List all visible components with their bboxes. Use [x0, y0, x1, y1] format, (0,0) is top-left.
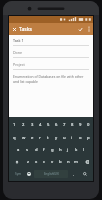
staticText: s [26, 147, 29, 153]
button[interactable]: Search [78, 169, 91, 179]
staticText: f [43, 147, 45, 153]
staticText: 3 [31, 122, 34, 128]
staticText: l [83, 147, 85, 153]
staticText: 9 [79, 122, 82, 128]
button[interactable]: c [40, 157, 48, 167]
button[interactable]: q [10, 132, 19, 143]
staticText: Enumeration of Databases on file with ot… [13, 74, 89, 84]
staticText: 1 [13, 122, 16, 128]
button[interactable]: i [68, 132, 76, 143]
staticText: h [59, 147, 62, 153]
button[interactable]: 3 [28, 119, 36, 130]
button[interactable]: d [32, 145, 40, 155]
staticText: u [63, 135, 66, 141]
button[interactable]: Project [13, 62, 89, 70]
button[interactable]: 7 [60, 119, 68, 130]
button[interactable]: 0 [84, 119, 92, 130]
button[interactable]: o [76, 132, 84, 143]
button[interactable]: 4 [36, 119, 44, 130]
staticText: 4 [39, 122, 42, 128]
button[interactable]: Shift [10, 157, 23, 167]
button[interactable]: r [36, 132, 44, 143]
button[interactable]: e [28, 132, 36, 143]
button[interactable]: z [23, 157, 32, 167]
staticText: g [51, 147, 54, 153]
button[interactable]: j [64, 145, 72, 155]
staticText: c [43, 159, 46, 165]
staticText: i [71, 135, 73, 141]
staticText: Tasks [19, 26, 32, 33]
button[interactable]: . [69, 169, 78, 179]
button[interactable]: m [72, 157, 80, 167]
staticText: r [39, 135, 41, 141]
button[interactable]: h [56, 145, 64, 155]
staticText: b [59, 159, 62, 165]
button[interactable]: 9 [76, 119, 84, 130]
button[interactable]: f [40, 145, 48, 155]
staticText: k [75, 147, 78, 153]
button[interactable]: k [72, 145, 80, 155]
staticText: Done [13, 50, 23, 55]
button[interactable]: g [48, 145, 56, 155]
staticText: y [55, 135, 58, 141]
button[interactable]: Emoji [24, 169, 33, 179]
staticText: 8 [71, 122, 74, 128]
staticText: 6 [55, 122, 58, 128]
button[interactable]: a [14, 145, 23, 155]
button[interactable]: Backspace [80, 157, 92, 167]
staticText: p [87, 135, 90, 141]
button[interactable]: More options [85, 23, 93, 35]
staticText: 7 [63, 122, 66, 128]
button[interactable]: v [48, 157, 56, 167]
button[interactable]: x [32, 157, 40, 167]
button[interactable]: 8 [68, 119, 76, 130]
staticText: Task 1 [13, 38, 24, 43]
button[interactable]: Close [9, 23, 19, 35]
staticText: q [13, 135, 16, 141]
staticText: a [17, 147, 20, 153]
staticText: 0 [87, 122, 90, 128]
staticText: o [79, 135, 82, 141]
staticText: v [51, 159, 54, 165]
staticText: . [73, 172, 75, 177]
button[interactable]: Sym [11, 169, 24, 179]
staticText: n [67, 159, 70, 165]
button[interactable]: t [44, 132, 52, 143]
button[interactable]: p [84, 132, 92, 143]
button[interactable]: 5 [44, 119, 52, 130]
button[interactable]: b [56, 157, 64, 167]
button[interactable]: 6 [52, 119, 60, 130]
button[interactable]: s [23, 145, 32, 155]
staticText: English(UK) [44, 172, 59, 176]
button[interactable]: Task 1 [13, 38, 89, 46]
button[interactable]: Save [75, 23, 85, 35]
staticText: x [35, 159, 38, 165]
staticText: d [35, 147, 38, 153]
staticText: m [74, 159, 78, 165]
staticText: t [47, 135, 49, 141]
staticText: 2 [22, 122, 25, 128]
staticText: j [67, 147, 69, 153]
staticText: Project [13, 62, 25, 67]
staticText: 5 [47, 122, 50, 128]
button[interactable]: w [19, 132, 28, 143]
staticText: w [22, 135, 26, 141]
button[interactable]: 2 [19, 119, 28, 130]
button[interactable]: n [64, 157, 72, 167]
staticText: e [31, 135, 34, 141]
button[interactable]: Space [34, 170, 68, 178]
button[interactable]: y [52, 132, 60, 143]
staticText: Sym [15, 172, 21, 176]
button[interactable]: l [80, 145, 88, 155]
button[interactable]: u [60, 132, 68, 143]
button[interactable]: 1 [10, 119, 19, 130]
button[interactable]: Done [13, 50, 89, 58]
staticText: z [27, 159, 29, 165]
